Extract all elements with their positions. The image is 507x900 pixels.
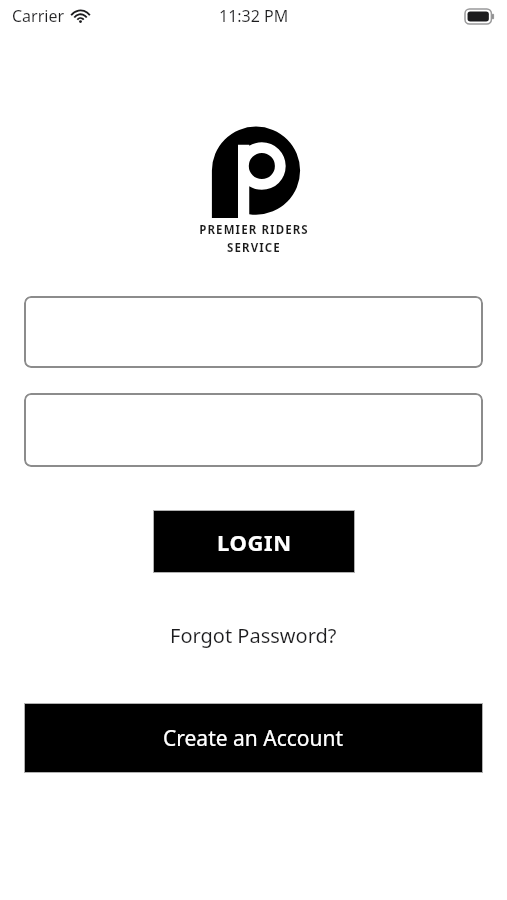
staticText: Forgot Password? xyxy=(170,622,337,649)
button[interactable]: LOGIN xyxy=(153,510,355,573)
staticText: SERVICE xyxy=(227,240,281,256)
staticText: Carrier xyxy=(12,5,65,27)
button[interactable]: Create an Account xyxy=(24,703,483,773)
staticText: Create an Account xyxy=(163,724,344,753)
button[interactable]: Username field xyxy=(24,296,483,368)
staticText: LOGIN xyxy=(217,527,292,557)
staticText: 11:32 PM xyxy=(219,5,289,27)
staticText: PREMIER RIDERS xyxy=(199,222,309,238)
button[interactable]: Password field xyxy=(24,393,483,467)
button[interactable]: Forgot Password? xyxy=(160,618,347,653)
